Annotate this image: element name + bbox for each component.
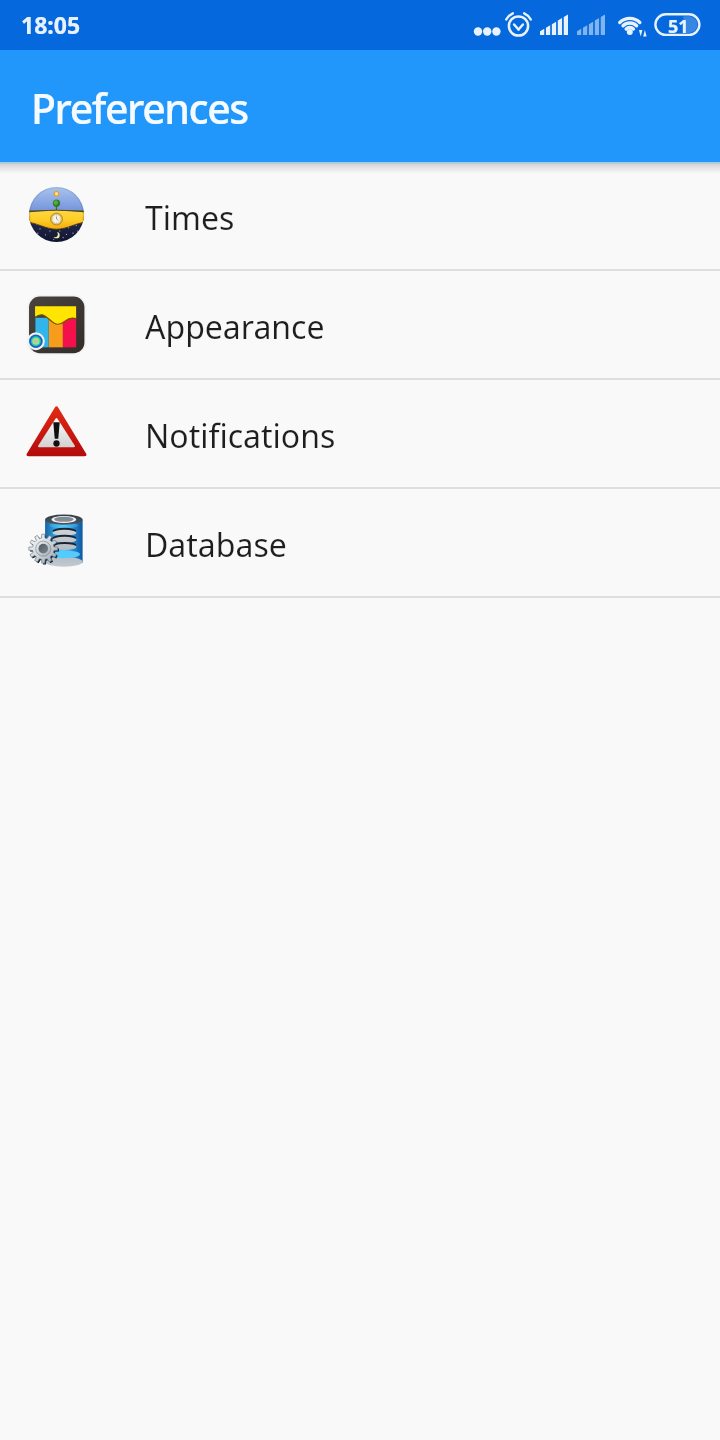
button[interactable]: Database icon	[0, 489, 720, 596]
other: Notifications icon	[24, 402, 88, 466]
button[interactable]: Appearance icon	[0, 271, 720, 378]
staticText: Database	[145, 523, 287, 567]
staticText: 51	[668, 14, 689, 39]
other: Database icon	[24, 511, 88, 575]
staticText: 18:05	[21, 9, 81, 40]
staticText: Appearance	[145, 305, 325, 349]
staticText: Notifications	[145, 414, 336, 458]
button[interactable]: Notifications icon	[0, 380, 720, 487]
staticText: Times	[145, 196, 235, 240]
other: Appearance icon	[24, 293, 88, 357]
other: Times icon	[24, 184, 88, 248]
button[interactable]: Times icon	[0, 162, 720, 269]
staticText: Preferences	[31, 80, 248, 136]
